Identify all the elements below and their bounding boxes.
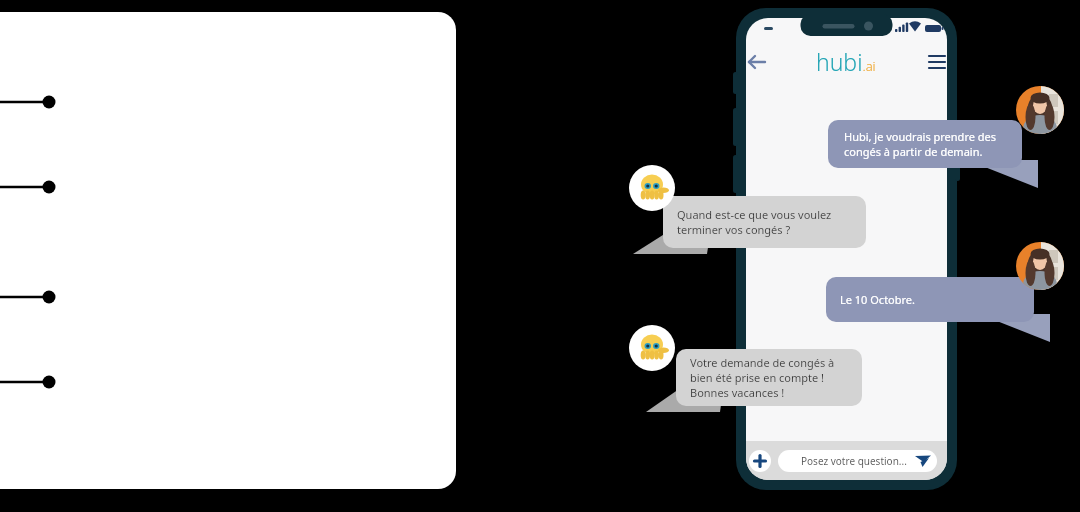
button[interactable]: Votre demande de congés à bien été prise… [676,349,862,406]
button[interactable]: Back [743,48,771,76]
staticText: hubi.ai [816,46,876,77]
staticText: Quand est-ce que vous voulez terminer vo… [677,207,832,237]
staticText: Hubi, je voudrais prendre des congés à p… [844,129,997,159]
button[interactable]: Quand est-ce que vous voulez terminer vo… [663,196,866,248]
staticText: Le 10 Octobre. [840,292,916,307]
button[interactable]: Add attachment [735,450,757,472]
button[interactable]: Hubi, je voudrais prendre des congés à p… [828,120,1022,168]
staticText: Posez votre question... [801,454,907,468]
button[interactable] [0,12,456,489]
staticText: Votre demande de congés à bien été prise… [690,355,835,400]
button[interactable]: Posez votre question... [778,450,948,472]
button[interactable]: hubi.ai [816,46,876,77]
button[interactable]: Menu [923,48,951,76]
button[interactable]: Send [922,450,944,472]
button[interactable]: Le 10 Octobre. [826,277,1034,322]
